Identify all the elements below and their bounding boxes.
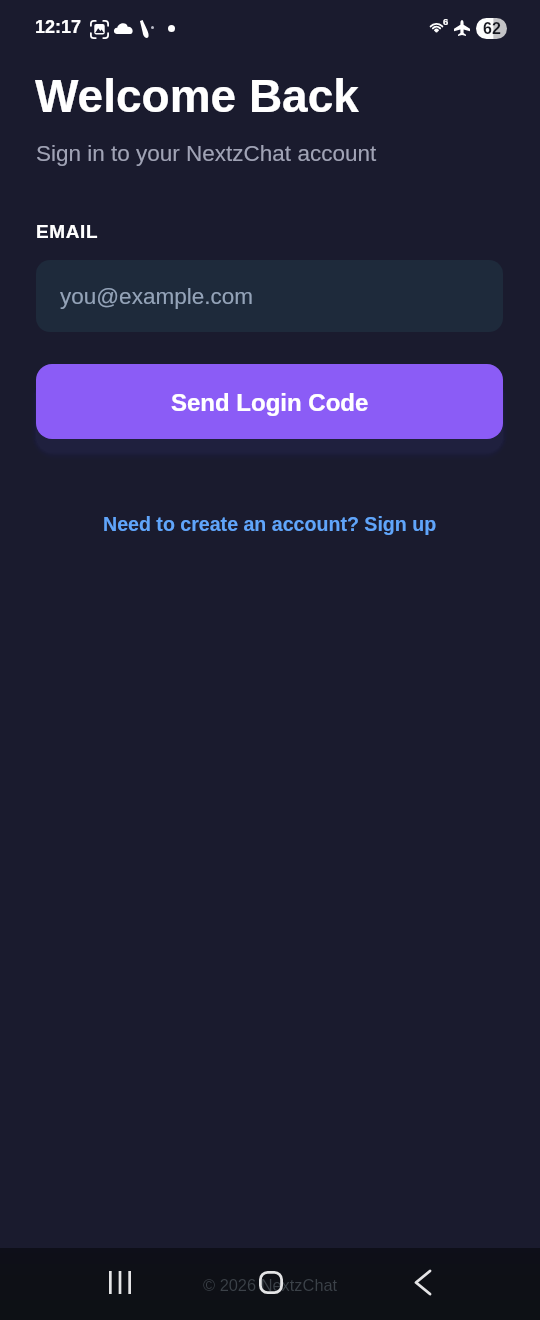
staticText: Welcome Back	[35, 70, 359, 121]
button[interactable]: Email address input	[36, 260, 503, 332]
staticText: 6	[443, 16, 449, 27]
button[interactable]: Need to create an account? Sign up	[103, 513, 437, 535]
staticText: Send Login Code	[171, 389, 369, 416]
staticText: Need to create an account? Sign up	[103, 513, 437, 535]
staticText: 12:17	[35, 17, 82, 37]
staticText: you@example.com	[60, 284, 253, 309]
button[interactable]: Home	[236, 1256, 306, 1308]
staticText: Sign in to your NextzChat account	[36, 141, 377, 166]
button[interactable]: Back	[388, 1256, 458, 1308]
staticText: © 2026 NextzChat	[203, 1276, 338, 1294]
staticText: 62	[483, 20, 501, 38]
staticText: EMAIL	[36, 221, 99, 242]
button[interactable]: Send Login Code	[36, 364, 503, 439]
button[interactable]: Recent apps	[85, 1256, 155, 1308]
